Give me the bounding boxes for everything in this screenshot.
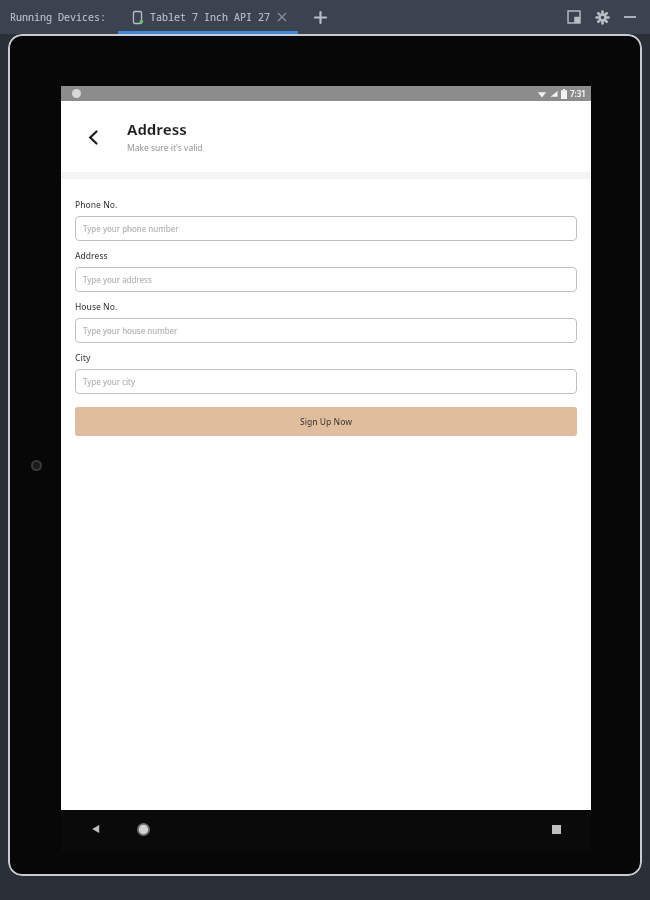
button[interactable]: Type your city xyxy=(75,369,577,394)
staticText: 7:31 xyxy=(570,88,586,99)
button[interactable]: Type your address xyxy=(75,267,577,292)
button[interactable]: Recent apps xyxy=(543,816,569,842)
staticText: Running Devices: xyxy=(10,10,106,24)
staticText: Sign Up Now xyxy=(300,416,353,428)
staticText: Type your address xyxy=(83,274,152,285)
button[interactable]: Tablet 7 Inch API 27 xyxy=(118,0,298,34)
staticText: Type your city xyxy=(83,376,135,387)
button[interactable]: Back xyxy=(75,119,111,155)
button[interactable]: Sign Up Now xyxy=(75,407,577,436)
button[interactable]: Type your house number xyxy=(75,318,577,343)
staticText: Tablet 7 Inch API 27 xyxy=(150,10,270,24)
button[interactable]: Minimize xyxy=(618,5,642,29)
button[interactable]: Layout xyxy=(562,5,586,29)
staticText: Type your phone number xyxy=(83,223,179,234)
button[interactable]: Add device xyxy=(308,5,332,29)
staticText: Phone No. xyxy=(75,199,118,211)
staticText: Type your house number xyxy=(83,325,178,336)
button[interactable]: Home xyxy=(128,814,158,844)
staticText: Address xyxy=(75,250,108,262)
staticText: Address xyxy=(127,119,187,139)
staticText: House No. xyxy=(75,301,118,313)
button[interactable]: Type your phone number xyxy=(75,216,577,241)
staticText: City xyxy=(75,352,91,364)
button[interactable]: Settings xyxy=(590,5,614,29)
staticText: Make sure it's valid xyxy=(127,142,203,154)
button[interactable]: Back xyxy=(83,816,109,842)
